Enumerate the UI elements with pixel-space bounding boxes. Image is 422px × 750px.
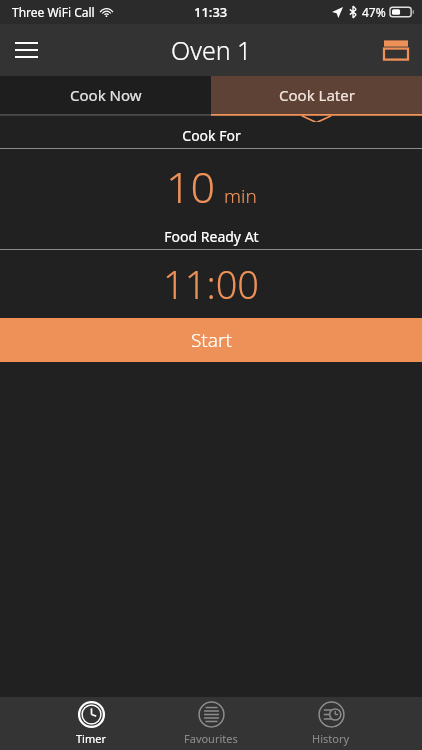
button[interactable]: Favourites [165, 697, 257, 750]
staticText: Food Ready At [164, 227, 259, 246]
staticText: Cook For [182, 126, 241, 145]
staticText: 11:33 [194, 3, 228, 21]
staticText: Three WiFi Call [12, 4, 95, 20]
staticText: Favourites [184, 731, 238, 746]
button[interactable]: Cook Now [0, 76, 211, 114]
staticText: Timer [76, 731, 106, 746]
staticText: Cook Later [279, 85, 355, 105]
button[interactable]: Menu [0, 24, 52, 76]
button[interactable]: Timer [45, 697, 137, 750]
button[interactable]: Select oven [370, 24, 422, 76]
button[interactable]: 11:00 [0, 250, 422, 318]
button[interactable]: Start [0, 318, 422, 362]
staticText: min [224, 183, 257, 209]
button[interactable]: 10 [0, 149, 422, 223]
button[interactable]: Cook Later [211, 76, 422, 114]
staticText: History [312, 731, 350, 746]
staticText: Oven 1 [171, 33, 252, 67]
staticText: 11:00 [163, 258, 260, 310]
button[interactable]: History [285, 697, 377, 750]
staticText: 10 [166, 157, 216, 216]
staticText: Cook Now [70, 85, 142, 105]
staticText: 47% [362, 4, 386, 20]
staticText: Start [191, 327, 232, 353]
